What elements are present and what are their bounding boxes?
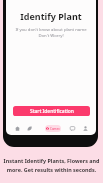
staticText: Identify Plant <box>6 10 96 22</box>
button[interactable]: Home <box>14 125 21 132</box>
button[interactable]: Messages <box>69 125 76 132</box>
staticText: Camera <box>50 127 60 131</box>
button[interactable]: Profile <box>82 125 89 132</box>
button[interactable]: Start Identification <box>13 106 90 116</box>
button[interactable]: Camera <box>45 125 61 132</box>
button[interactable]: Discover <box>26 125 33 132</box>
staticText: Instant Identify Plants, Flowers and mor… <box>0 157 103 173</box>
staticText: Start Identification <box>30 108 74 115</box>
staticText: If you don't know about plant name Don't… <box>6 26 96 39</box>
